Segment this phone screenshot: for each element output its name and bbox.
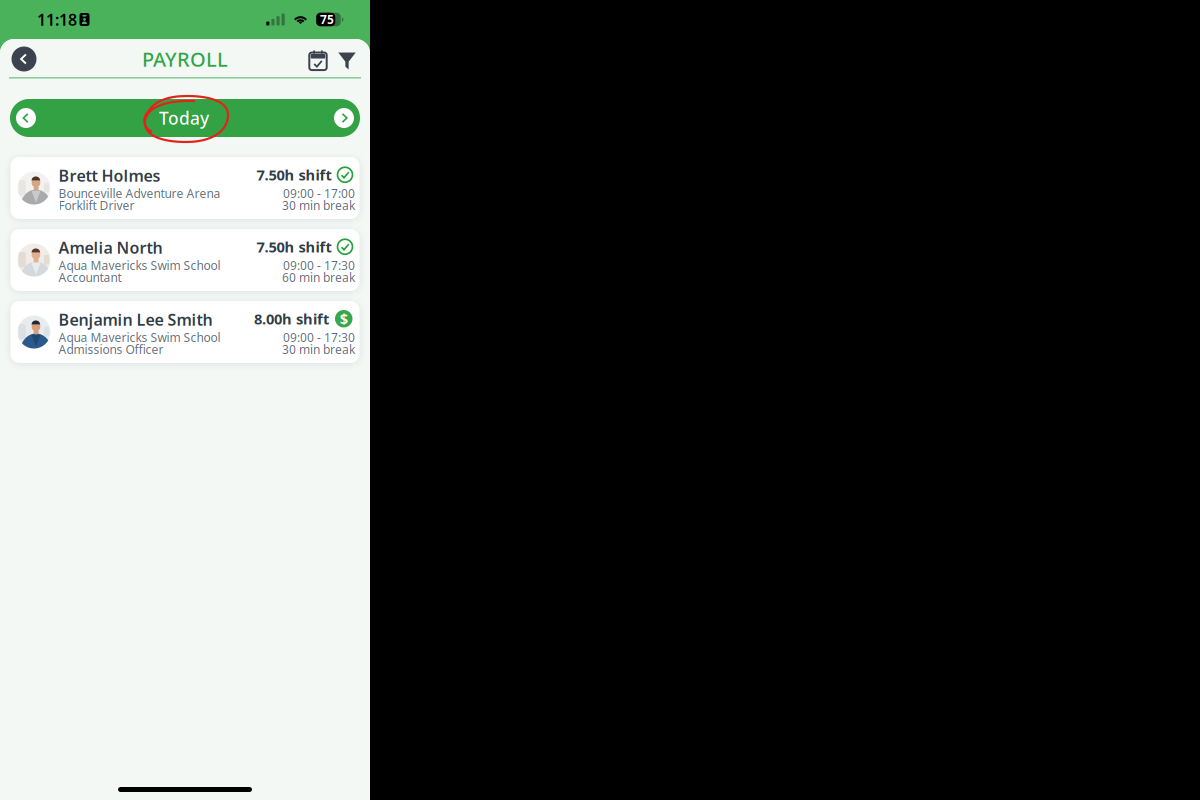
button[interactable]: Amelia North <box>10 229 359 291</box>
button[interactable]: Calendar <box>305 39 331 79</box>
staticText: 09:00 - 17:00 <box>283 185 355 201</box>
staticText: 8.00h shift <box>254 309 329 328</box>
button[interactable]: Next day <box>328 99 360 137</box>
staticText: PAYROLL <box>142 46 228 72</box>
staticText: Amelia North <box>58 237 162 258</box>
staticText: Benjamin Lee Smith <box>58 309 212 330</box>
button[interactable]: Previous day <box>10 99 42 137</box>
staticText: Aqua Mavericks Swim School <box>58 329 220 345</box>
button[interactable]: Benjamin Lee Smith <box>10 301 359 363</box>
staticText: Accountant <box>58 269 121 285</box>
button[interactable]: Brett Holmes <box>10 157 359 219</box>
staticText: $ <box>340 309 348 328</box>
staticText: Brett Holmes <box>58 165 160 186</box>
staticText: Aqua Mavericks Swim School <box>58 257 220 273</box>
staticText: 60 min break <box>282 269 355 285</box>
staticText: 09:00 - 17:30 <box>283 257 355 273</box>
staticText: Bounceville Adventure Arena <box>58 185 220 201</box>
staticText: Forklift Driver <box>58 197 134 213</box>
staticText: 7.50h shift <box>256 165 331 184</box>
staticText: 09:00 - 17:30 <box>283 329 355 345</box>
staticText: Admissions Officer <box>58 341 163 357</box>
staticText: 75 <box>320 11 334 27</box>
button[interactable]: Filter <box>334 39 360 79</box>
staticText: 30 min break <box>282 197 355 213</box>
staticText: 30 min break <box>282 341 355 357</box>
staticText: Today <box>159 106 209 129</box>
staticText: 7.50h shift <box>256 237 331 256</box>
staticText: 11:18 <box>37 9 77 30</box>
button[interactable]: Back <box>5 39 43 79</box>
